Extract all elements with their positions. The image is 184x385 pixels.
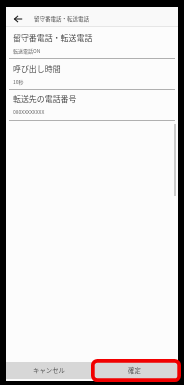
staticText: 転送電話ON [13, 47, 41, 54]
staticText: キャンセル [33, 366, 65, 375]
button[interactable]: キャンセル [6, 362, 91, 379]
staticText: 確定 [128, 366, 141, 375]
staticText: 留守番電話・転送電話 [13, 32, 93, 44]
staticText: 080XXXXXXXX [13, 108, 45, 115]
button[interactable]: Back [7, 8, 28, 29]
button[interactable] [6, 59, 178, 90]
staticText: 呼び出し時間 [13, 63, 61, 75]
button[interactable] [6, 26, 178, 59]
staticText: 転送先の電話番号 [13, 93, 77, 105]
staticText: 留守番電話・転送電話 [34, 15, 90, 23]
button[interactable] [6, 90, 178, 121]
staticText: 10秒 [13, 78, 24, 85]
button[interactable]: 確定 [91, 362, 178, 379]
